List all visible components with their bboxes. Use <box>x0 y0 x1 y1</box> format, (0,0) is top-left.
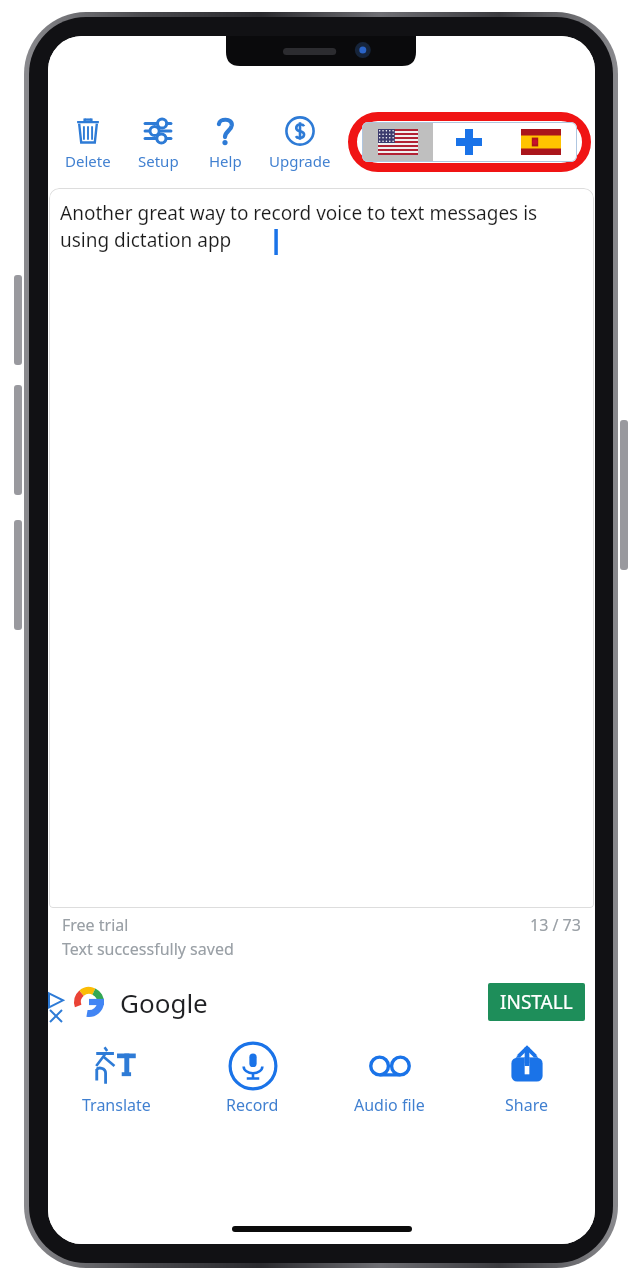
button[interactable]: Record <box>184 1030 321 1126</box>
staticText: INSTALL <box>500 989 573 1015</box>
staticText: Audio file <box>354 1094 425 1116</box>
staticText: Free trial <box>62 914 129 936</box>
staticText: Google <box>120 985 208 1020</box>
staticText: Share <box>505 1094 548 1116</box>
staticText: Translate <box>82 1094 151 1116</box>
button[interactable]: INSTALL <box>488 983 585 1021</box>
staticText: Upgrade <box>269 151 331 171</box>
button[interactable]: Upgrade <box>256 102 344 182</box>
staticText: Delete <box>65 151 111 171</box>
staticText: Text successfully saved <box>62 938 234 960</box>
button[interactable]: Delete <box>54 102 122 182</box>
staticText: Setup <box>138 151 179 171</box>
staticText: Record <box>226 1094 279 1116</box>
staticText: 13 / 73 <box>530 914 581 936</box>
button[interactable]: Translate <box>48 1030 184 1126</box>
button[interactable]: Audio file <box>321 1030 458 1126</box>
button[interactable]: Google <box>48 974 595 1030</box>
staticText: Another great way to record voice to tex… <box>60 200 586 253</box>
button[interactable]: Help <box>194 102 256 182</box>
staticText: Help <box>209 151 242 171</box>
button[interactable]: Share <box>458 1030 595 1126</box>
button[interactable] <box>348 104 591 180</box>
button[interactable]: Setup <box>122 102 194 182</box>
button[interactable]: Another great way to record voice to tex… <box>49 188 594 908</box>
